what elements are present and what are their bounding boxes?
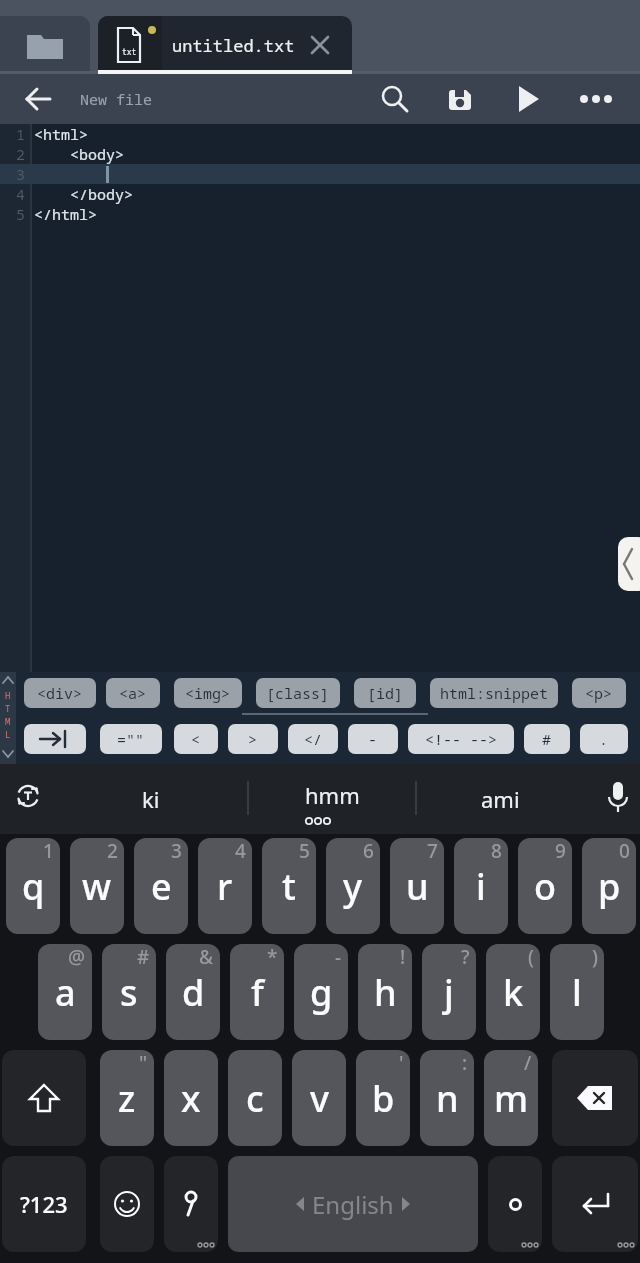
- button[interactable]: [0, 16, 90, 74]
- button[interactable]: m: [484, 1050, 538, 1146]
- button[interactable]: [440, 79, 480, 119]
- button[interactable]: e: [134, 838, 188, 934]
- staticText: 8: [491, 838, 502, 864]
- button[interactable]: y: [326, 838, 380, 934]
- button[interactable]: >: [228, 724, 278, 754]
- button[interactable]: z: [100, 1050, 154, 1146]
- button[interactable]: u: [390, 838, 444, 934]
- staticText: 4: [235, 838, 246, 864]
- staticText: g: [310, 968, 333, 1017]
- button[interactable]: d: [166, 944, 220, 1040]
- staticText: :: [462, 1050, 468, 1076]
- staticText: </body>: [34, 184, 134, 204]
- button[interactable]: a: [38, 944, 92, 1040]
- staticText: [class]: [266, 683, 330, 703]
- button[interactable]: c: [228, 1050, 282, 1146]
- button[interactable]: p: [582, 838, 636, 934]
- button[interactable]: ?123: [2, 1156, 86, 1252]
- staticText: t: [282, 862, 296, 911]
- button[interactable]: [552, 1156, 638, 1252]
- button[interactable]: f: [230, 944, 284, 1040]
- button[interactable]: .: [580, 724, 628, 754]
- button[interactable]: s: [102, 944, 156, 1040]
- button[interactable]: [class]: [256, 678, 340, 708]
- staticText: *: [267, 944, 278, 970]
- staticText: 6: [363, 838, 374, 864]
- button[interactable]: j: [422, 944, 476, 1040]
- staticText: /: [524, 1050, 532, 1076]
- button[interactable]: g: [294, 944, 348, 1040]
- button[interactable]: <: [174, 724, 218, 754]
- button[interactable]: [598, 775, 638, 821]
- button[interactable]: [304, 29, 336, 61]
- button[interactable]: txt: [98, 16, 352, 74]
- button[interactable]: r: [198, 838, 252, 934]
- staticText: html:snippet: [440, 683, 549, 703]
- staticText: m: [494, 1074, 529, 1123]
- button[interactable]: English: [228, 1156, 478, 1252]
- button[interactable]: [552, 1050, 638, 1146]
- button[interactable]: h: [358, 944, 412, 1040]
- staticText: <p>: [585, 683, 613, 703]
- button[interactable]: ki: [56, 764, 246, 834]
- staticText: #: [137, 944, 150, 970]
- staticText: untitled.txt: [172, 34, 295, 57]
- button[interactable]: x: [164, 1050, 218, 1146]
- button[interactable]: w: [70, 838, 124, 934]
- button[interactable]: n: [420, 1050, 474, 1146]
- button[interactable]: [10, 778, 46, 814]
- staticText: e: [151, 862, 172, 911]
- staticText: !: [400, 944, 406, 970]
- staticText: hmm: [305, 780, 360, 810]
- button[interactable]: t: [262, 838, 316, 934]
- staticText: ?: [461, 944, 470, 970]
- button[interactable]: <div>: [24, 678, 96, 708]
- button[interactable]: [24, 724, 86, 754]
- staticText: 5: [299, 838, 310, 864]
- button[interactable]: [100, 1156, 154, 1252]
- button[interactable]: [508, 79, 548, 119]
- staticText: 9: [555, 838, 566, 864]
- button[interactable]: [488, 1156, 542, 1252]
- button[interactable]: ami: [417, 764, 583, 834]
- button[interactable]: b: [356, 1050, 410, 1146]
- staticText: 4: [16, 184, 26, 204]
- button[interactable]: <img>: [174, 678, 242, 708]
- staticText: j: [444, 968, 454, 1017]
- button[interactable]: k: [486, 944, 540, 1040]
- button[interactable]: [18, 81, 58, 117]
- button[interactable]: q: [6, 838, 60, 934]
- button[interactable]: <!-- -->: [408, 724, 514, 754]
- staticText: 2: [16, 144, 26, 164]
- staticText: <div>: [37, 683, 83, 703]
- staticText: 1: [43, 838, 54, 864]
- staticText: 7: [427, 838, 438, 864]
- button[interactable]: #: [524, 724, 570, 754]
- button[interactable]: <a>: [106, 678, 160, 708]
- button[interactable]: i: [454, 838, 508, 934]
- button[interactable]: html:snippet: [430, 678, 558, 708]
- button[interactable]: [id]: [354, 678, 416, 708]
- staticText: d: [182, 968, 205, 1017]
- button[interactable]: o: [518, 838, 572, 934]
- button[interactable]: [164, 1156, 218, 1252]
- button[interactable]: [375, 79, 415, 119]
- staticText: c: [246, 1074, 264, 1123]
- button[interactable]: hmm: [249, 764, 415, 826]
- staticText: [id]: [367, 683, 404, 703]
- button[interactable]: -: [348, 724, 398, 754]
- staticText: </: [304, 729, 323, 749]
- staticText: i: [476, 862, 486, 911]
- staticText: </html>: [34, 204, 98, 224]
- staticText: 3: [171, 838, 182, 864]
- button[interactable]: [618, 537, 640, 591]
- button[interactable]: <p>: [572, 678, 626, 708]
- staticText: <a>: [119, 683, 147, 703]
- button[interactable]: [2, 1050, 86, 1146]
- button[interactable]: [576, 79, 616, 119]
- button[interactable]: l: [550, 944, 604, 1040]
- staticText: <body>: [34, 144, 125, 164]
- button[interactable]: v: [292, 1050, 346, 1146]
- button[interactable]: ="": [100, 724, 162, 754]
- button[interactable]: </: [288, 724, 338, 754]
